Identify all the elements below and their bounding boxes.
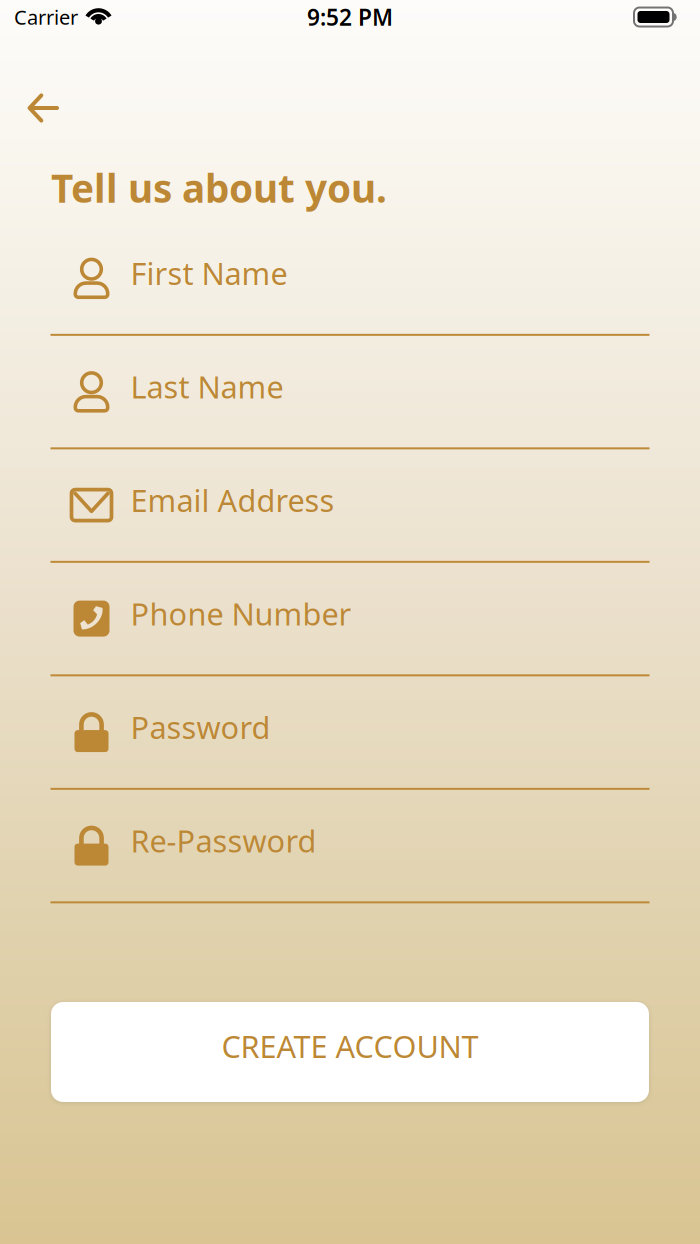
staticText: 9:52 PM (307, 2, 393, 32)
staticText: Tell us about you. (51, 162, 387, 213)
button[interactable]: Back (16, 81, 70, 135)
staticText: Last Name (130, 366, 283, 407)
staticText: Carrier (14, 4, 78, 30)
staticText: First Name (130, 253, 287, 293)
staticText: Email Address (130, 480, 334, 520)
button[interactable]: Last Name (50, 336, 649, 449)
button[interactable]: CREATE ACCOUNT (51, 1002, 649, 1102)
button[interactable]: Phone Number (50, 563, 649, 676)
staticText: Phone Number (130, 593, 351, 634)
button[interactable]: Email Address (50, 449, 649, 563)
button[interactable]: First Name (50, 222, 649, 336)
button[interactable]: Password (50, 676, 649, 790)
staticText: Re-Password (130, 820, 316, 861)
staticText: Password (130, 707, 270, 747)
staticText: CREATE ACCOUNT (221, 1026, 478, 1066)
button[interactable]: Re-Password (50, 790, 649, 903)
